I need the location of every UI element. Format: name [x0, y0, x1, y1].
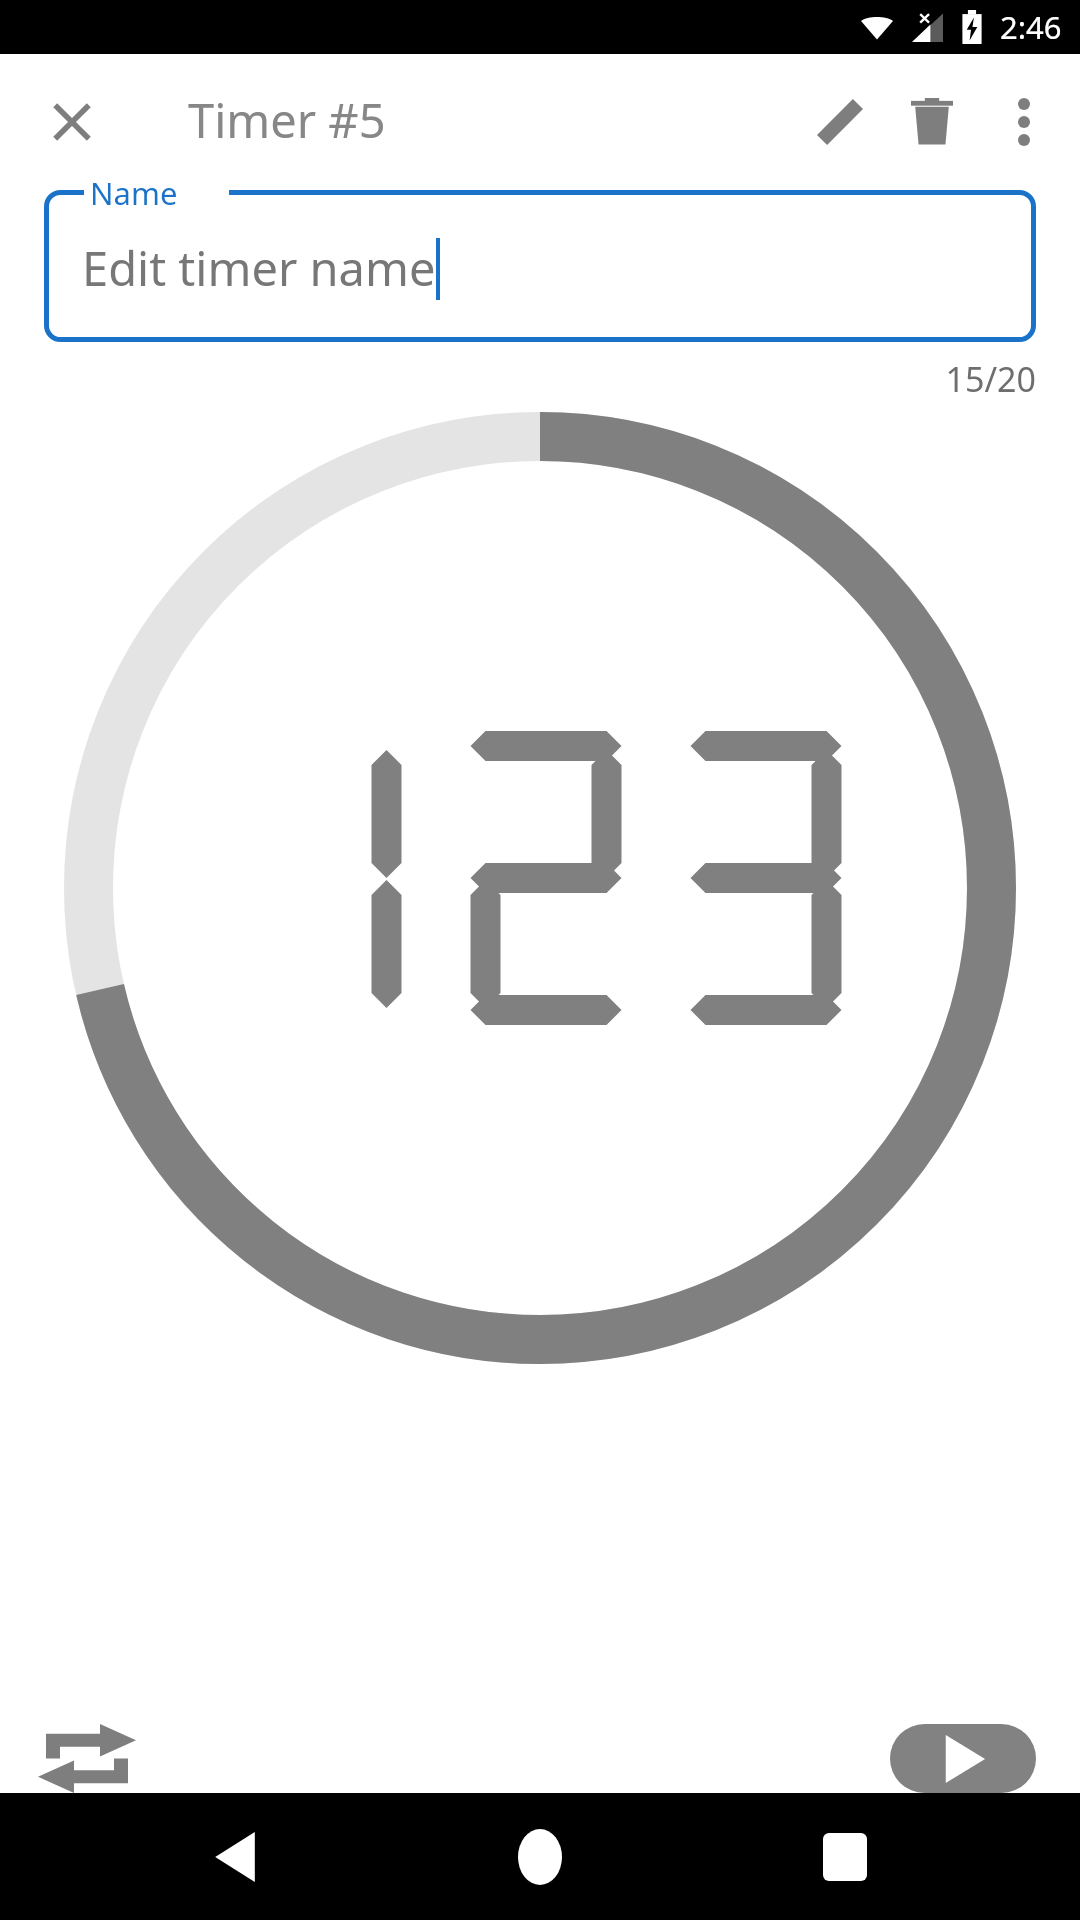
button[interactable]: Recent apps — [785, 1797, 905, 1917]
button[interactable]: Delete — [886, 76, 978, 168]
button[interactable]: More options — [978, 76, 1070, 168]
staticText: Edit timer name — [82, 236, 436, 300]
staticText: 15/20 — [0, 356, 1036, 402]
staticText: Name — [90, 172, 178, 214]
staticText: 2:46 — [1000, 6, 1062, 48]
button[interactable]: Home — [480, 1797, 600, 1917]
button[interactable]: Start timer — [890, 1724, 1036, 1793]
button[interactable]: Close — [30, 80, 114, 164]
button[interactable]: Edit timer name — [44, 190, 1036, 342]
staticText: Timer #5 — [188, 88, 386, 152]
button[interactable]: Back — [175, 1797, 295, 1917]
button[interactable]: Repeat — [24, 1724, 152, 1793]
button[interactable]: Edit — [794, 76, 886, 168]
